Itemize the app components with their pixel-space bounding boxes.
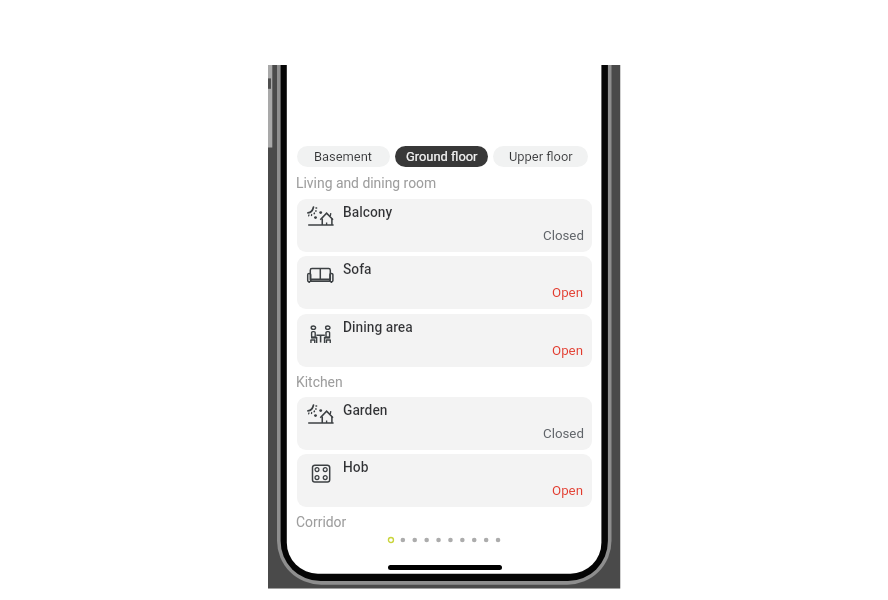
- button[interactable]: Garden: [297, 397, 592, 450]
- button[interactable]: Hob: [297, 454, 592, 507]
- staticText: Open: [552, 285, 584, 301]
- button[interactable]: Basement: [297, 146, 390, 167]
- staticText: Open: [552, 483, 584, 499]
- staticText: Upper floor: [509, 149, 573, 164]
- staticText: Living and dining room: [296, 175, 437, 191]
- staticText: Corridor: [296, 514, 347, 530]
- staticText: Garden: [343, 402, 388, 418]
- staticText: Sofa: [343, 261, 372, 277]
- staticText: Open: [552, 343, 584, 359]
- staticText: Balcony: [343, 204, 393, 220]
- staticText: Dining area: [343, 319, 413, 335]
- staticText: Ground floor: [406, 149, 478, 164]
- other: Page indicator: [287, 534, 602, 546]
- staticText: Basement: [314, 149, 373, 164]
- button[interactable]: Ground floor: [395, 146, 488, 167]
- button[interactable]: Upper floor: [493, 146, 588, 167]
- staticText: Closed: [543, 228, 584, 244]
- staticText: Hob: [343, 459, 369, 475]
- staticText: Kitchen: [296, 374, 343, 390]
- button[interactable]: Sofa: [297, 256, 592, 309]
- button[interactable]: Balcony: [297, 199, 592, 252]
- button[interactable]: Dining area: [297, 314, 592, 367]
- staticText: Closed: [543, 426, 584, 442]
